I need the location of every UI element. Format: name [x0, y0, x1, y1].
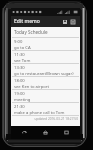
- staticText: Today Schedule: [14, 29, 48, 35]
- button[interactable]: 13:30: [11, 64, 80, 76]
- staticText: Edit memo: [14, 18, 40, 25]
- staticText: go to CA: [14, 45, 31, 50]
- staticText: 19:00: [14, 91, 25, 97]
- button[interactable]: Back: [19, 126, 30, 139]
- button[interactable]: 19:00: [11, 90, 80, 102]
- staticText: see Ken to airport: [14, 84, 50, 89]
- button[interactable]: 21:30: [11, 103, 80, 115]
- button[interactable]: 11:30: [11, 51, 80, 63]
- button[interactable]: Save memo: [61, 16, 69, 27]
- staticText: 13:30: [14, 65, 25, 71]
- button[interactable]: More options: [69, 16, 77, 27]
- staticText: go to restaurant(Brown sugar): [14, 71, 74, 76]
- staticText: 18:00: [14, 78, 25, 84]
- staticText: 9:00: [14, 39, 23, 45]
- button[interactable]: 18:00: [11, 77, 80, 89]
- button[interactable]: Home: [40, 126, 51, 139]
- staticText: make a phone call to Tom: [14, 110, 65, 115]
- button[interactable]: Recent apps: [61, 126, 72, 139]
- staticText: 11:30: [14, 52, 25, 58]
- staticText: updated 2016-03-21 18:27:50: [11, 117, 78, 121]
- staticText: see Tom: [14, 58, 31, 63]
- button[interactable]: 9:00: [11, 38, 80, 50]
- staticText: 21:30: [14, 104, 25, 110]
- staticText: meeting: [14, 97, 31, 102]
